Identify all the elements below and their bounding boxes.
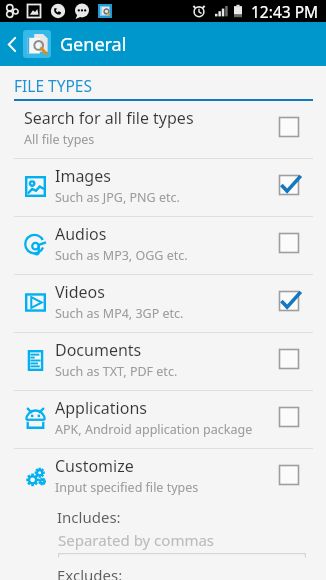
staticText: Excludes: bbox=[57, 565, 123, 580]
staticText: Separated by commas bbox=[58, 530, 215, 550]
button[interactable]: Checkbox bbox=[273, 459, 305, 491]
button[interactable]: Checkbox bbox=[273, 227, 305, 259]
staticText: Audios bbox=[55, 223, 107, 245]
staticText: Videos bbox=[55, 281, 105, 303]
staticText: Such as JPG, PNG etc. bbox=[55, 189, 180, 206]
button[interactable]: Applications bbox=[0, 391, 326, 449]
staticText: APK, Android application package bbox=[55, 421, 253, 438]
button[interactable]: Images bbox=[0, 159, 326, 217]
staticText: All file types bbox=[24, 131, 95, 148]
button[interactable]: Videos bbox=[0, 275, 326, 333]
staticText: 12:43 PM bbox=[251, 1, 319, 22]
staticText: Such as MP4, 3GP etc. bbox=[55, 305, 184, 322]
button[interactable]: Customize bbox=[0, 449, 326, 507]
button[interactable]: Checkbox bbox=[273, 401, 305, 433]
button[interactable]: Search for all file types bbox=[0, 101, 326, 159]
staticText: General bbox=[60, 32, 127, 57]
staticText: Input specified file types bbox=[55, 479, 199, 496]
button[interactable]: Audios bbox=[0, 217, 326, 275]
staticText: Documents bbox=[55, 339, 142, 361]
staticText: Includes: bbox=[57, 507, 121, 527]
button[interactable]: Documents bbox=[0, 333, 326, 391]
button[interactable]: Checkbox bbox=[273, 169, 305, 201]
button[interactable]: Checkbox bbox=[273, 343, 305, 375]
staticText: Applications bbox=[55, 397, 147, 419]
staticText: Such as TXT, PDF etc. bbox=[55, 363, 178, 380]
staticText: FILE TYPES bbox=[14, 75, 92, 96]
staticText: Customize bbox=[55, 455, 134, 477]
staticText: Such as MP3, OGG etc. bbox=[55, 247, 188, 264]
staticText: Search for all file types bbox=[24, 107, 194, 129]
button[interactable]: Checkbox bbox=[273, 111, 305, 143]
button[interactable]: Checkbox bbox=[273, 285, 305, 317]
button[interactable]: Back bbox=[0, 22, 23, 66]
staticText: Images bbox=[55, 165, 111, 187]
